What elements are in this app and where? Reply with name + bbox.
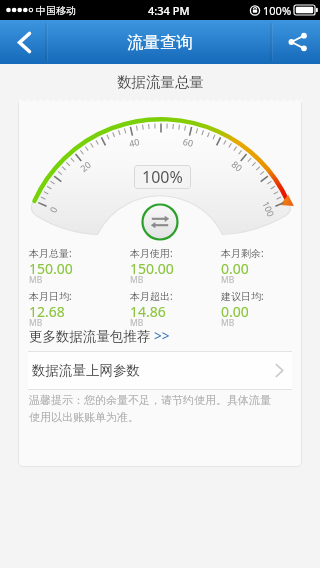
staticText: 建议日均: (221, 289, 264, 303)
staticText: 数据流量总量 (117, 73, 204, 91)
staticText: 0.00 (221, 302, 249, 321)
staticText: 本月剩余: (221, 246, 264, 260)
staticText: 数据流量上网参数 (32, 362, 140, 379)
staticText: MB (130, 317, 144, 329)
staticText: MB (221, 274, 235, 286)
staticText: 150.00 (29, 259, 73, 278)
staticText: 20 (77, 158, 93, 174)
button[interactable]: Share (271, 20, 320, 64)
staticText: 0 (46, 204, 60, 214)
staticText: 本月日均: (29, 289, 72, 303)
staticText: MB (29, 274, 43, 286)
staticText: 0.00 (221, 259, 249, 278)
staticText: 40 (128, 135, 141, 149)
staticText: 100% (263, 3, 292, 18)
staticText: 本月总量: (29, 246, 72, 260)
staticText: 100% (142, 166, 183, 188)
staticText: 80 (229, 158, 245, 174)
staticText: 温馨提示：您的余量不足，请节约使用。具体流量使用以出账账单为准。 (29, 393, 281, 425)
staticText: 14.86 (130, 302, 166, 321)
staticText: MB (130, 274, 144, 286)
staticText: >> (154, 327, 170, 345)
button[interactable]: 数据流量上网参数 (28, 351, 292, 390)
button[interactable]: Back (0, 20, 46, 64)
staticText: 4:34 PM (148, 3, 190, 18)
staticText: 更多数据流量包推荐 (29, 328, 151, 345)
staticText: 100 (260, 199, 278, 219)
staticText: 中国移动 (36, 4, 76, 17)
staticText: 150.00 (130, 259, 174, 278)
staticText: 60 (182, 135, 195, 149)
staticText: 本月超出: (130, 289, 173, 303)
staticText: MB (221, 317, 235, 329)
button[interactable]: 更多数据流量包推荐 (27, 325, 172, 347)
button[interactable]: Switch data view (141, 203, 179, 241)
staticText: 流量查询 (127, 32, 193, 53)
staticText: 12.68 (29, 302, 65, 321)
staticText: MB (29, 317, 43, 329)
staticText: 本月使用: (130, 246, 173, 260)
